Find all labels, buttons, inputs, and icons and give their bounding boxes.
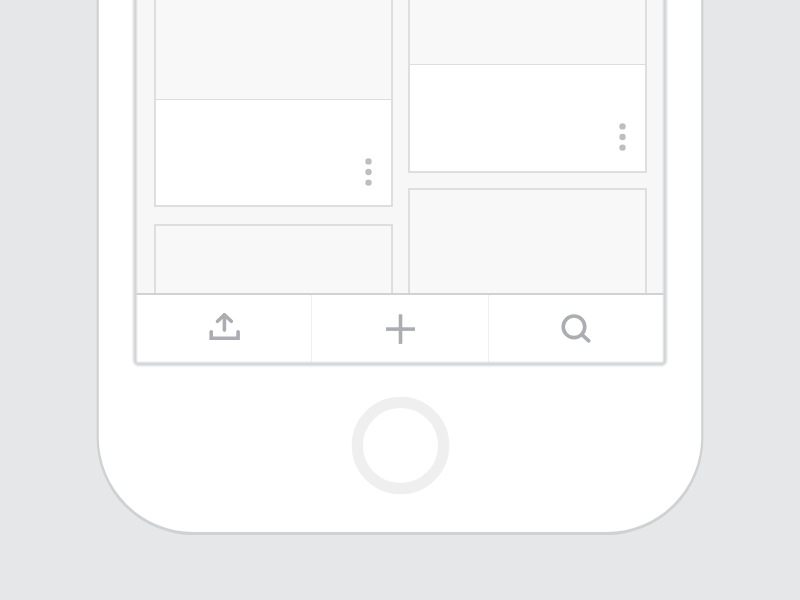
button[interactable]: Share [135, 295, 311, 364]
button[interactable]: Search [489, 295, 665, 364]
button[interactable] [408, 188, 647, 300]
button[interactable] [154, 224, 393, 334]
button[interactable]: Add [312, 295, 488, 364]
button[interactable]: More options [408, 0, 647, 173]
button[interactable]: More options [610, 119, 635, 155]
button[interactable]: More options [154, 0, 393, 207]
button[interactable]: More options [356, 154, 381, 190]
button[interactable]: Home [351, 396, 450, 495]
